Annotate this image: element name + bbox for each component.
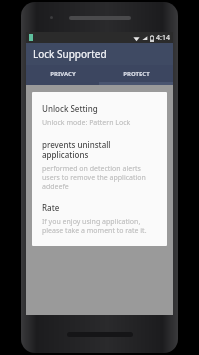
staticText: Unlock Setting — [42, 103, 98, 114]
staticText: PROTECT — [123, 70, 150, 78]
button[interactable]: PRIVACY — [26, 65, 99, 82]
button[interactable]: prevents uninstall applications — [42, 139, 157, 191]
staticText: prevents uninstall applications — [42, 139, 157, 160]
staticText: Rate — [42, 202, 60, 213]
button[interactable]: Unlock Setting — [42, 103, 157, 128]
staticText: performed on detection alerts users to r… — [42, 164, 157, 191]
staticText: If you enjoy using application, please t… — [42, 217, 157, 235]
staticText: 4:14 — [156, 33, 170, 43]
staticText: Unlock mode: Pattern Lock — [42, 118, 131, 128]
staticText: Lock Supported — [33, 47, 107, 61]
button[interactable]: Rate — [42, 202, 157, 235]
button[interactable]: PROTECT — [99, 65, 173, 82]
staticText: PRIVACY — [50, 70, 76, 78]
